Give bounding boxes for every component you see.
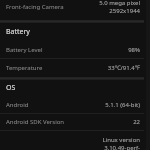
staticText: Front-facing Camera [6, 3, 64, 11]
button[interactable]: Battery Level [0, 41, 150, 58]
staticText: 5.1.1 (64-bit) [105, 101, 140, 109]
staticText: Battery [6, 27, 30, 37]
button[interactable]: Temperature [0, 58, 150, 77]
staticText: 22 [133, 118, 140, 126]
button[interactable]: Linux version [0, 130, 150, 150]
staticText: Linux version [102, 136, 140, 144]
staticText: Temperature [6, 64, 43, 72]
staticText: Android [6, 101, 29, 109]
button[interactable]: Android SDK Version [0, 113, 150, 130]
button[interactable]: Front-facing Camera [0, 0, 150, 20]
staticText: OS [6, 83, 16, 93]
staticText: 5.0 mega pixel [99, 0, 140, 7]
staticText: Android SDK Version [6, 118, 65, 126]
staticText: 33℃/91.4℉ [107, 64, 140, 72]
staticText: 3.10.49-perf- [104, 144, 140, 150]
staticText: Battery Level [6, 46, 43, 54]
staticText: 98% [128, 46, 140, 54]
button[interactable]: Android [0, 96, 150, 113]
staticText: 2592x1944 [109, 7, 140, 15]
